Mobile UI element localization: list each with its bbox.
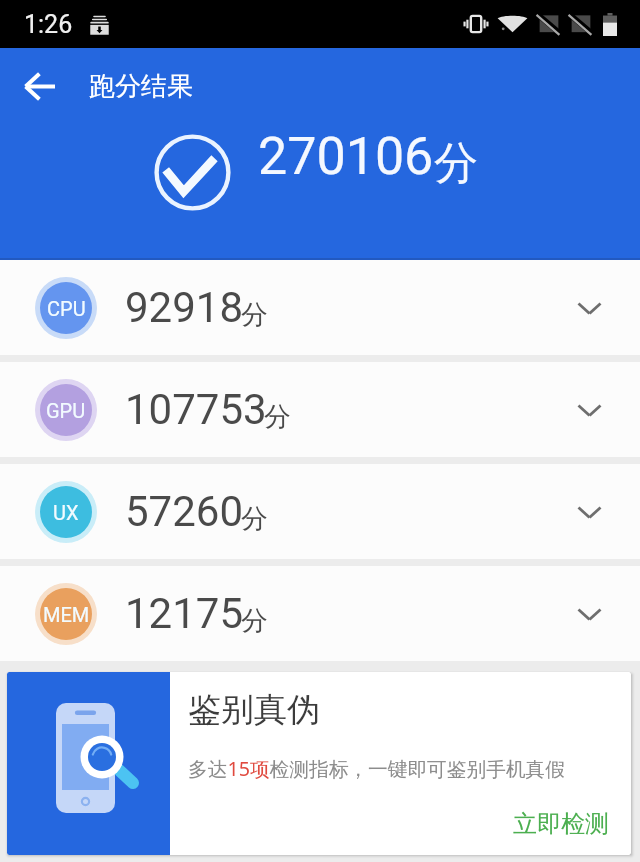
button[interactable]: UX bbox=[0, 464, 640, 559]
staticText: MEM bbox=[43, 603, 90, 626]
button[interactable]: Expand details bbox=[558, 277, 620, 339]
staticText: 分 bbox=[241, 604, 268, 638]
staticText: 分 bbox=[434, 136, 478, 191]
button[interactable]: Expand details bbox=[558, 583, 620, 645]
staticText: 分 bbox=[264, 400, 291, 434]
staticText: 立即检测 bbox=[513, 809, 609, 839]
staticText: CPU bbox=[47, 297, 86, 320]
staticText: 多达15项检测指标，一键即可鉴别手机真假 bbox=[188, 755, 565, 782]
button[interactable]: Expand details bbox=[558, 379, 620, 441]
button[interactable]: Expand details bbox=[558, 481, 620, 543]
staticText: GPU bbox=[46, 399, 86, 422]
staticText: 57260 bbox=[125, 487, 244, 536]
staticText: 跑分结果 bbox=[89, 70, 193, 103]
staticText: 92918 bbox=[125, 283, 244, 332]
staticText: 107753 bbox=[125, 385, 267, 434]
button[interactable]: 鉴别真伪 bbox=[7, 672, 631, 855]
staticText: 鉴别真伪 bbox=[188, 689, 320, 731]
staticText: 1:26 bbox=[24, 10, 73, 39]
staticText: 12175 bbox=[125, 589, 244, 638]
staticText: 270106 bbox=[258, 126, 434, 187]
staticText: 分 bbox=[241, 502, 268, 536]
staticText: 分 bbox=[241, 298, 268, 332]
button[interactable]: Back bbox=[0, 48, 80, 124]
button[interactable]: GPU bbox=[0, 362, 640, 457]
button[interactable]: CPU bbox=[0, 260, 640, 355]
button[interactable]: MEM bbox=[0, 566, 640, 661]
staticText: UX bbox=[53, 501, 79, 524]
